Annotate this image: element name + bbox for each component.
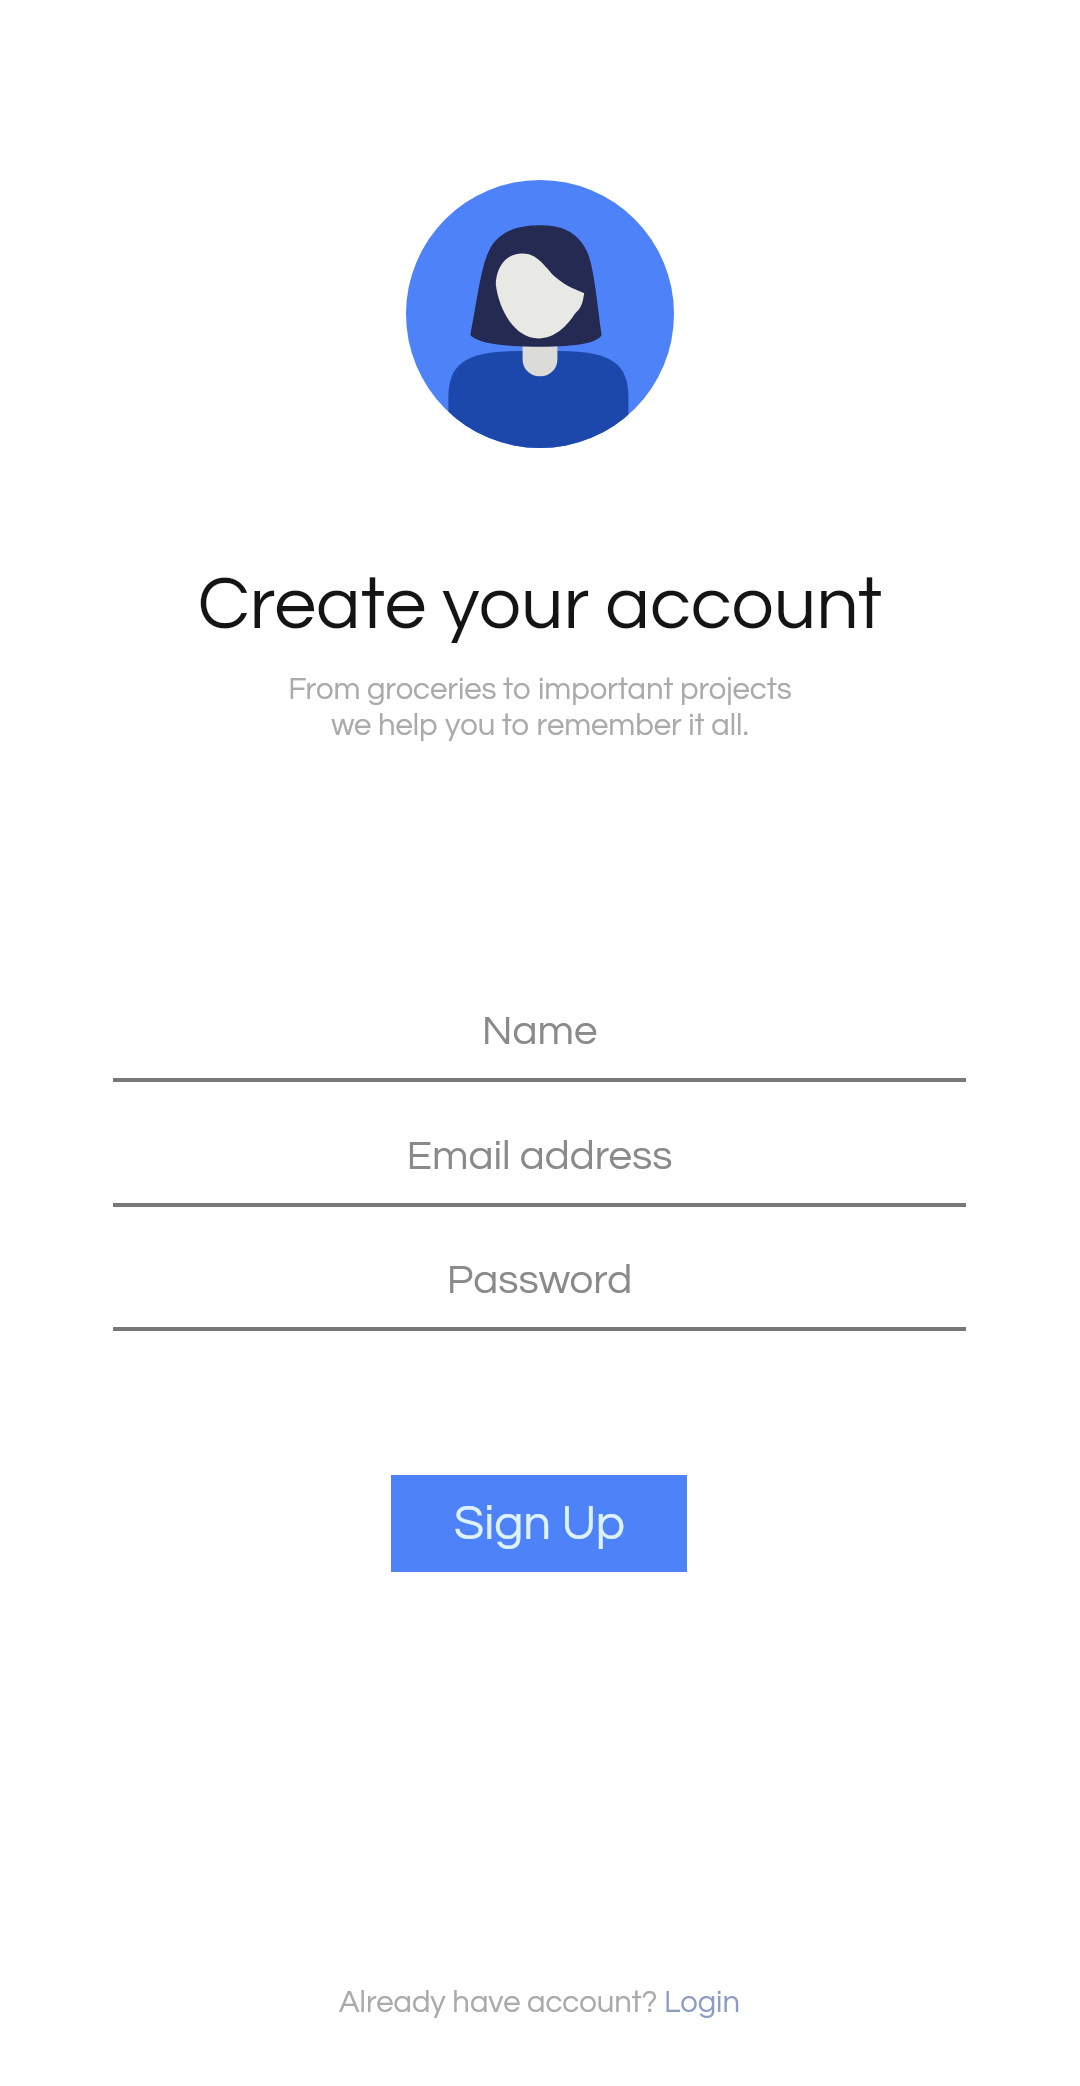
staticText: Name xyxy=(113,1010,966,1053)
button[interactable]: Password xyxy=(113,1228,966,1331)
button[interactable]: Login xyxy=(664,1987,741,2019)
button[interactable]: Name xyxy=(113,979,966,1082)
staticText: From groceries to important projects we … xyxy=(0,674,1080,741)
other: Profile avatar xyxy=(406,180,674,448)
staticText: Login xyxy=(664,1987,741,2019)
staticText: Already have account? xyxy=(339,1987,664,2019)
button[interactable]: Email address xyxy=(113,1104,966,1207)
staticText: Email address xyxy=(113,1135,966,1178)
staticText: Create your account xyxy=(0,566,1080,643)
button[interactable]: Sign Up xyxy=(391,1475,687,1572)
staticText: Sign Up xyxy=(454,1499,625,1549)
staticText: Password xyxy=(113,1259,966,1302)
